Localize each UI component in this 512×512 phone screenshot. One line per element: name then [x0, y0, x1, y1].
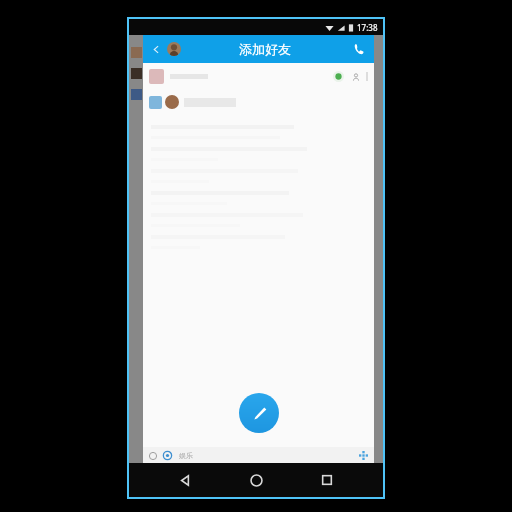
button[interactable]: Compose [239, 393, 279, 433]
button[interactable]: Back [170, 465, 200, 495]
button[interactable]: Profile [167, 42, 181, 56]
button[interactable] [143, 89, 374, 115]
button[interactable]: Apps [356, 448, 370, 462]
button[interactable]: Menu [147, 450, 158, 461]
staticText: 17:38 [357, 22, 378, 33]
button[interactable]: Shield [162, 450, 173, 461]
button[interactable]: Back [147, 40, 165, 58]
button[interactable]: Call [348, 38, 370, 60]
button[interactable]: Contacts [350, 71, 361, 82]
button[interactable]: WeChat [143, 63, 374, 89]
staticText: 娱乐 [179, 451, 193, 460]
button[interactable]: Recents [312, 465, 342, 495]
button[interactable]: Home [241, 465, 271, 495]
staticText: 添加好友 [239, 41, 291, 57]
button[interactable]: WeChat [333, 71, 344, 82]
